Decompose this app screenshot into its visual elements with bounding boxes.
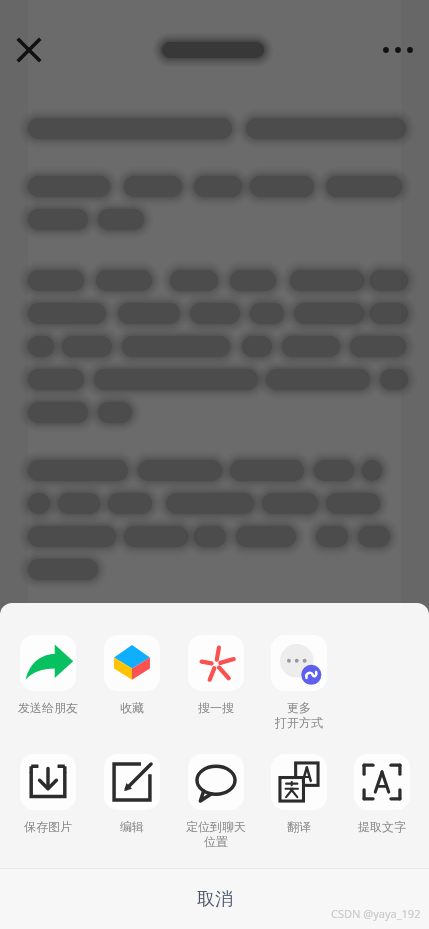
staticText: 发送给朋友	[18, 700, 78, 715]
button[interactable]: More options	[375, 27, 421, 73]
button[interactable]: 定位到聊天	[174, 752, 257, 849]
staticText: 定位到聊天	[186, 819, 246, 834]
button[interactable]: 提取文字	[340, 752, 423, 834]
button[interactable]: 编辑	[90, 752, 174, 834]
staticText: 提取文字	[358, 819, 406, 834]
button[interactable]: 更多	[257, 633, 340, 730]
staticText: 收藏	[120, 700, 144, 715]
button[interactable]: 搜一搜	[174, 633, 257, 715]
button[interactable]: 保存图片	[6, 752, 90, 834]
staticText: 翻译	[287, 819, 311, 834]
staticText: 搜一搜	[198, 700, 234, 715]
button[interactable]: Close	[6, 27, 52, 73]
button[interactable]: 取消	[0, 869, 429, 929]
staticText: 位置	[204, 834, 228, 849]
staticText: 更多	[287, 700, 311, 715]
button[interactable]: 收藏	[90, 633, 174, 715]
staticText: 打开方式	[275, 715, 323, 730]
button[interactable]: 发送给朋友	[6, 633, 90, 715]
staticText: 取消	[197, 888, 233, 911]
staticText: 保存图片	[24, 819, 72, 834]
button[interactable]: 翻译	[257, 752, 340, 834]
staticText: CSDN @yaya_192	[331, 906, 421, 921]
staticText: 编辑	[120, 819, 144, 834]
